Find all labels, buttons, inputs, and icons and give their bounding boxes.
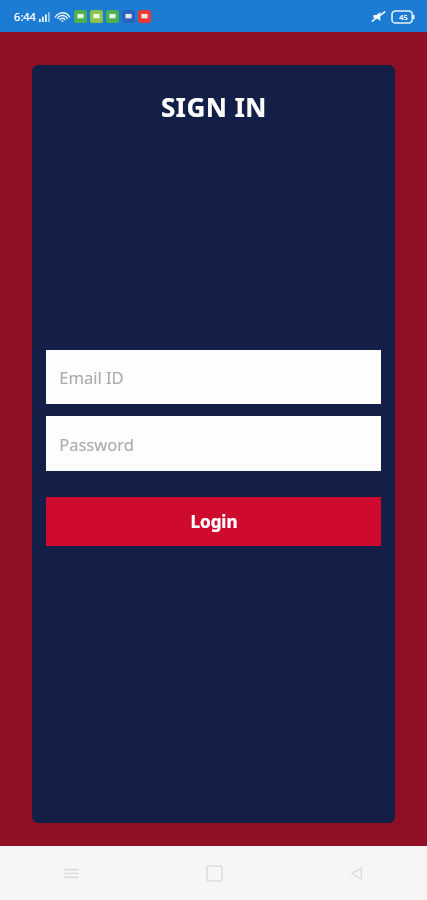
staticText: Login xyxy=(190,510,238,533)
staticText: Password xyxy=(59,433,134,455)
staticText: Email ID xyxy=(59,366,124,388)
button[interactable]: Login xyxy=(46,497,381,546)
staticText: 6:44 xyxy=(14,9,36,24)
staticText: 45 xyxy=(399,12,408,22)
button[interactable]: Password xyxy=(46,416,381,471)
staticText: SIGN IN xyxy=(161,89,267,124)
button[interactable]: Email ID xyxy=(46,350,381,404)
